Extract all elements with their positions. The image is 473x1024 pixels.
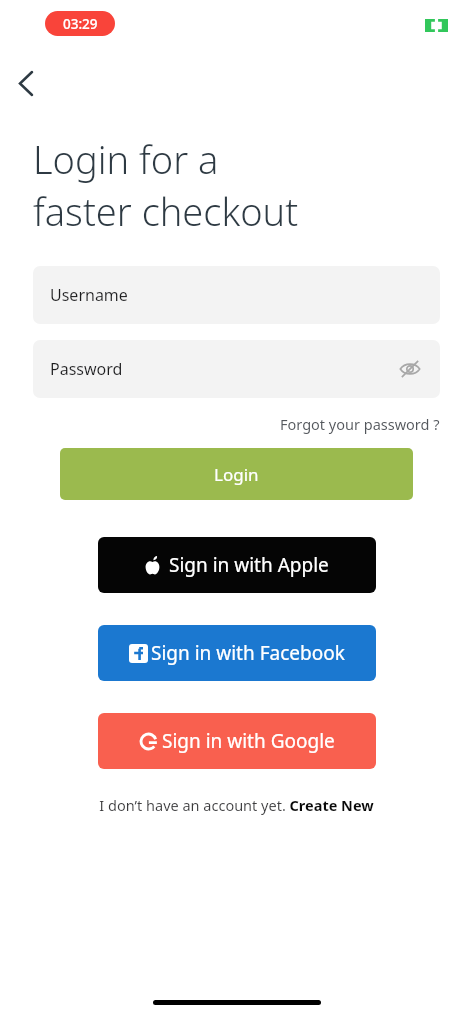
staticText: I don’t have an account yet. Create New [99, 795, 374, 815]
staticText: Sign in with Facebook [151, 640, 345, 666]
staticText: faster checkout [33, 185, 299, 237]
staticText: 03:29 [63, 15, 98, 33]
button[interactable]: Password [33, 340, 440, 398]
staticText: Forgot your password ? [280, 414, 440, 434]
staticText: Login [214, 463, 259, 486]
button[interactable]: Forgot your password ? [278, 412, 442, 436]
button[interactable]: Sign in with Facebook [98, 625, 376, 681]
button[interactable]: Login [60, 448, 413, 500]
staticText: Sign in with Apple [169, 552, 329, 578]
button[interactable]: Sign in with Apple [98, 537, 376, 593]
button[interactable]: Show password [394, 353, 426, 385]
button[interactable]: Sign in with Google [98, 713, 376, 769]
button[interactable]: Back [4, 61, 48, 105]
staticText: Password [50, 358, 123, 380]
other: Battery charging [425, 19, 448, 32]
staticText: Login for a [33, 133, 219, 185]
button[interactable]: I don’t have an account yet. Create New [95, 792, 378, 818]
staticText: Sign in with Google [162, 728, 335, 754]
button[interactable]: Username [33, 266, 440, 324]
staticText: Username [50, 284, 128, 306]
